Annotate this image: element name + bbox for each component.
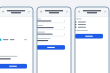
button[interactable] <box>37 25 65 30</box>
button[interactable]: Close <box>103 10 107 14</box>
button[interactable]: Close <box>65 10 69 14</box>
button[interactable]: Back <box>1 10 5 14</box>
button[interactable] <box>37 18 65 23</box>
button[interactable] <box>37 32 65 36</box>
button[interactable] <box>0 38 27 41</box>
button[interactable] <box>75 26 103 28</box>
button[interactable] <box>0 64 27 68</box>
button[interactable] <box>37 45 65 50</box>
button[interactable] <box>75 34 103 38</box>
button[interactable] <box>75 21 103 23</box>
button[interactable]: Close <box>27 10 31 14</box>
button[interactable] <box>75 23 103 26</box>
button[interactable]: Back <box>39 10 43 14</box>
button[interactable]: Back <box>77 10 81 14</box>
